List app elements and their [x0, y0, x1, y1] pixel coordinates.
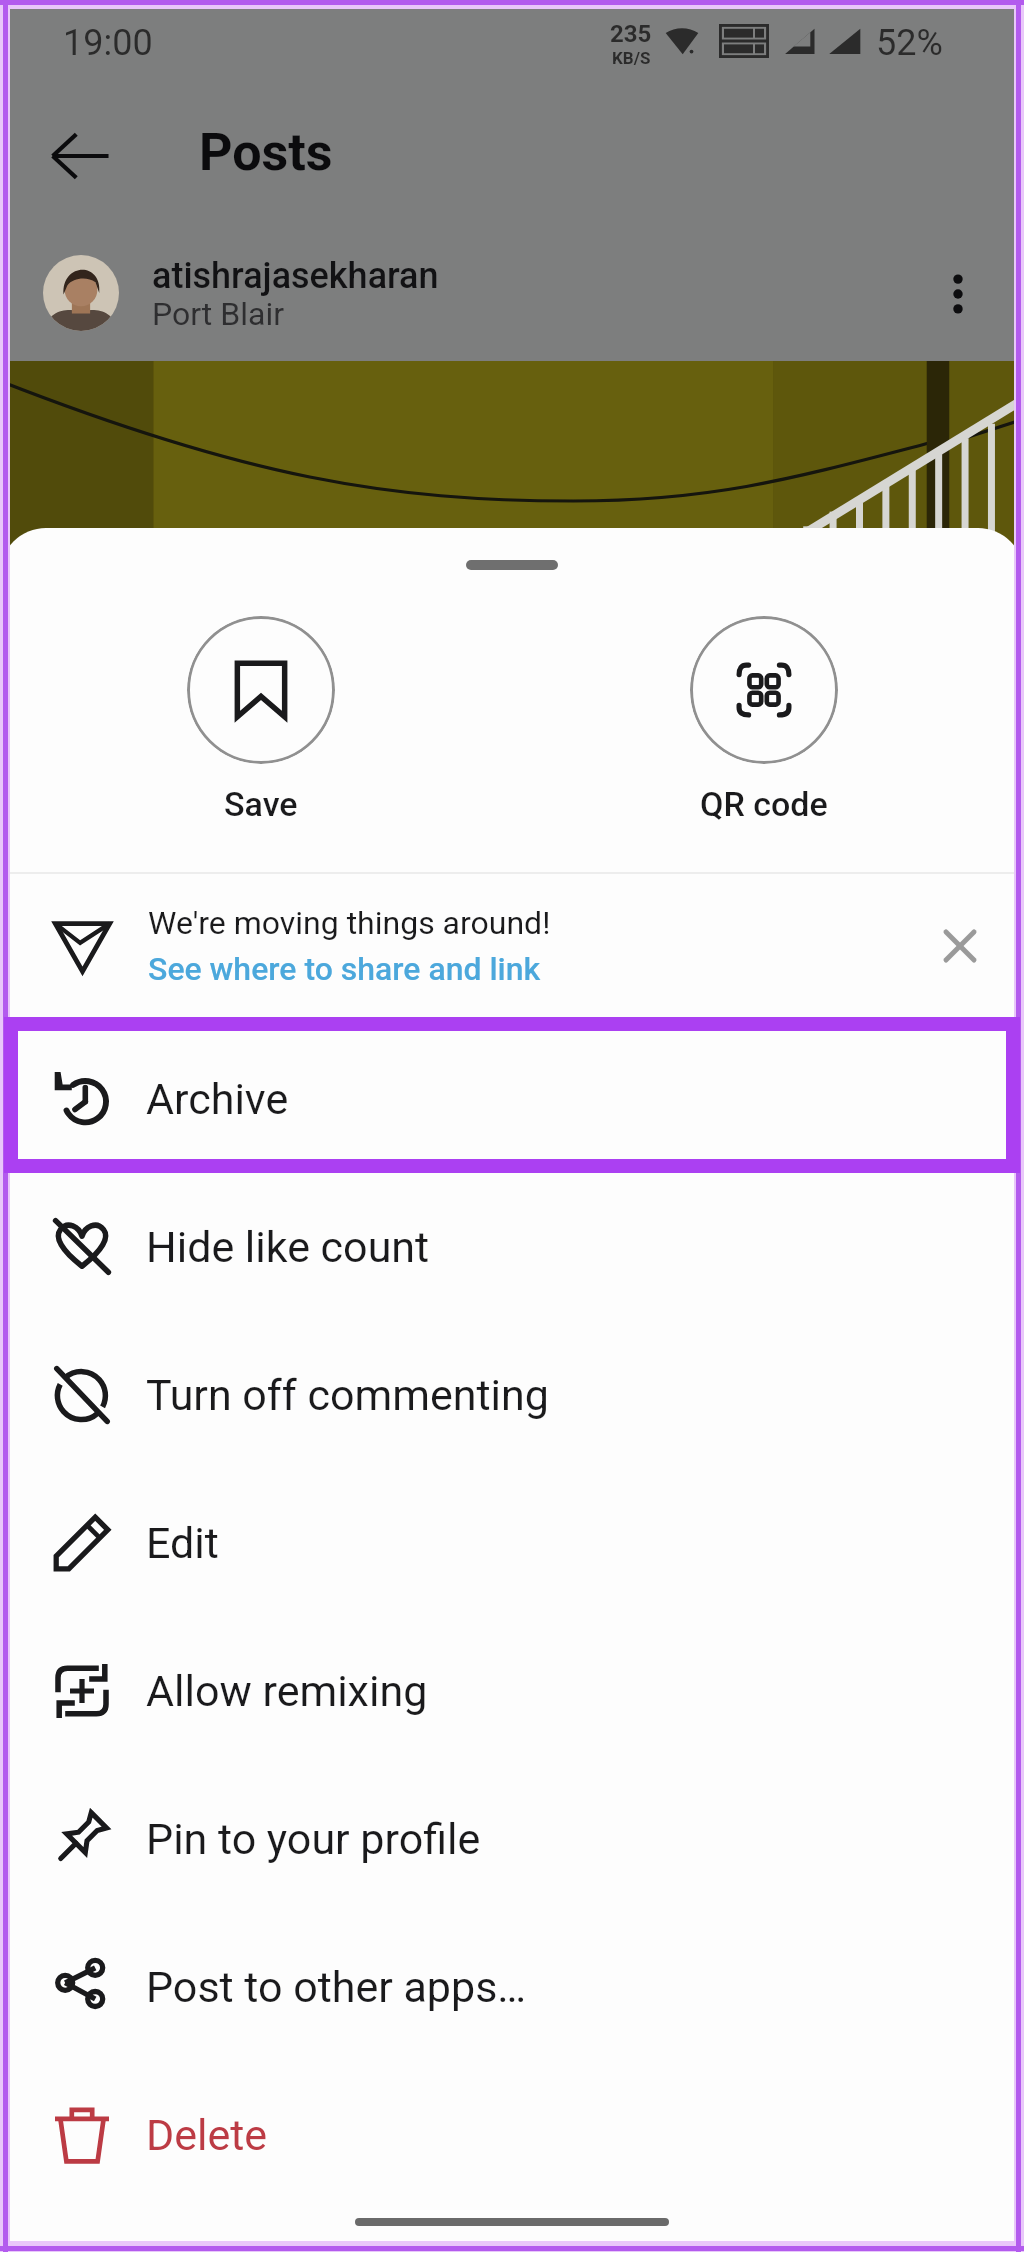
staticText: Hide like count	[146, 1222, 430, 1272]
staticText: Pin to your profile	[146, 1814, 481, 1864]
staticText: Post to other apps…	[146, 1962, 527, 2012]
button[interactable]: Hide like count	[0, 1173, 1024, 1321]
button[interactable]: Dismiss	[892, 880, 1024, 1012]
button[interactable]: Pin to your profile	[0, 1765, 1024, 1913]
button[interactable]: Allow remixing	[0, 1617, 1024, 1765]
button[interactable]: Post to other apps…	[0, 1913, 1024, 2061]
button[interactable]: Turn off commenting	[0, 1321, 1024, 1469]
button[interactable]: QR code	[512, 590, 1024, 824]
button[interactable]: Save	[0, 590, 512, 824]
button[interactable]: Profile picture	[43, 255, 119, 331]
staticText: We're moving things around!	[148, 904, 551, 942]
staticText: Port Blair	[152, 295, 285, 333]
staticText: Save	[224, 784, 298, 824]
staticText: KB/S	[612, 48, 651, 68]
staticText: Edit	[146, 1518, 219, 1568]
staticText: 52%	[876, 22, 943, 64]
button[interactable]: Archive	[0, 1025, 1024, 1173]
staticText: Allow remixing	[146, 1666, 428, 1716]
button[interactable]: Delete	[0, 2061, 1024, 2209]
staticText: Delete	[146, 2110, 268, 2160]
staticText: Posts	[199, 122, 333, 183]
button[interactable]: Edit	[0, 1469, 1024, 1617]
staticText: atishrajasekharan	[152, 255, 439, 297]
button[interactable]: More options	[918, 244, 998, 324]
staticText: QR code	[700, 784, 828, 824]
staticText: Archive	[146, 1074, 289, 1124]
staticText: 19:00	[63, 22, 153, 64]
staticText: Turn off commenting	[146, 1370, 549, 1420]
button[interactable]: We're moving things around!	[0, 874, 1024, 1018]
staticText: See where to share and link	[148, 950, 541, 988]
staticText: 235	[610, 20, 652, 48]
button[interactable]: Back	[28, 104, 132, 208]
